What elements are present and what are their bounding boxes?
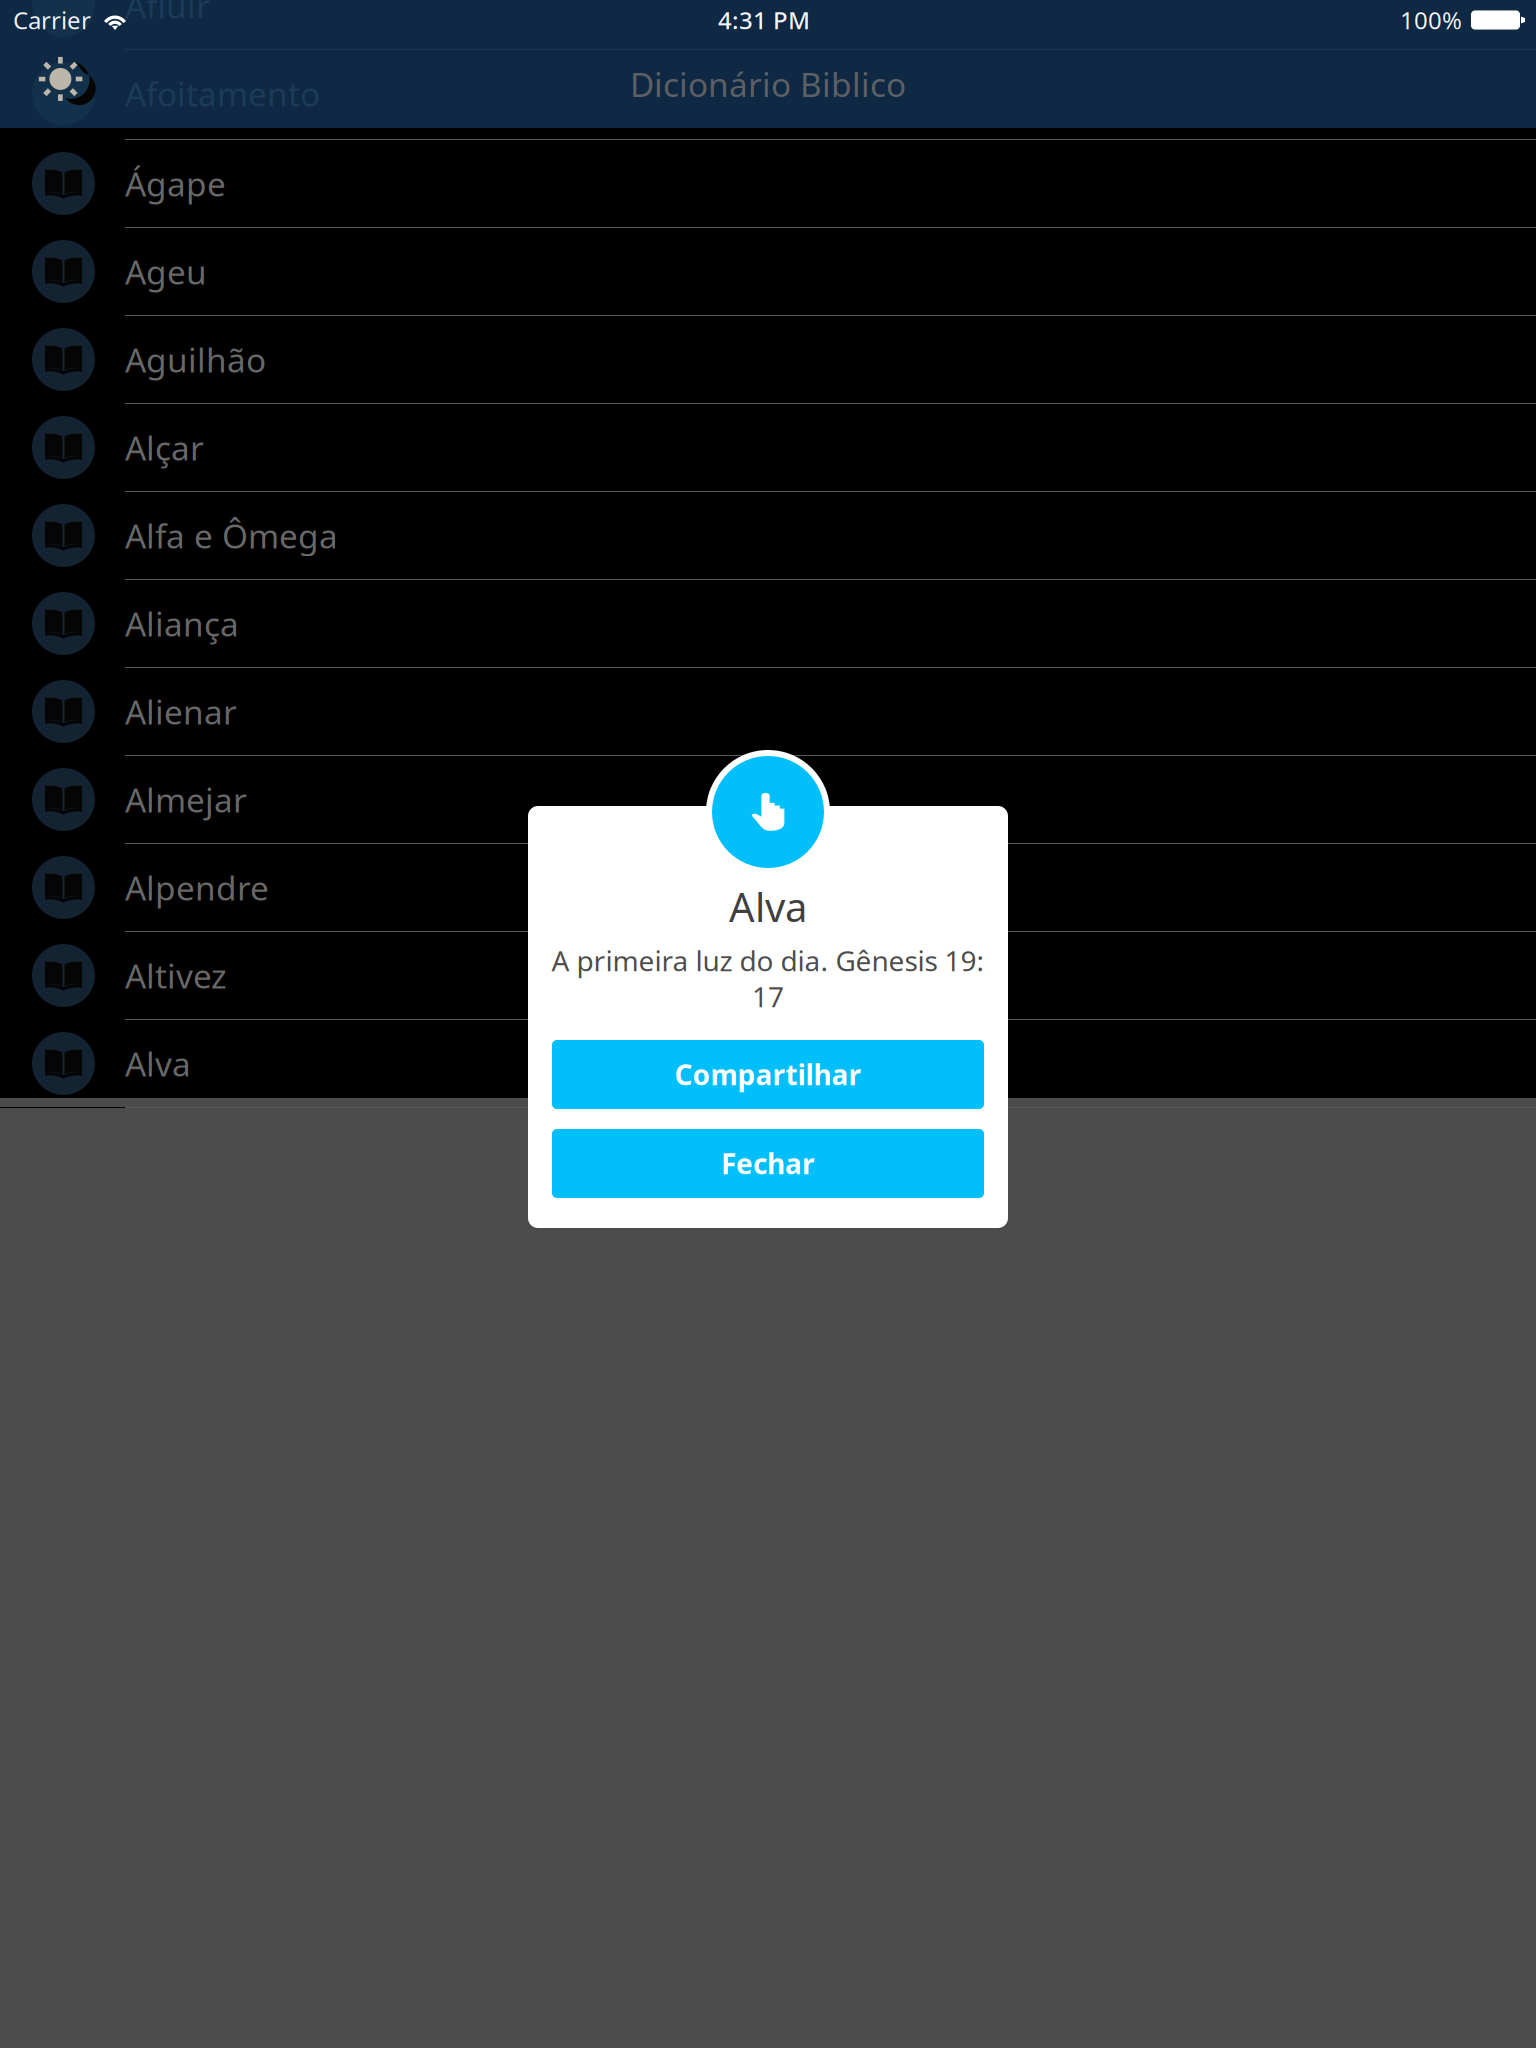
staticText: Compartilhar bbox=[674, 1056, 861, 1093]
staticText: Ágape bbox=[125, 161, 226, 206]
button[interactable]: Alternar modo noturno bbox=[0, 40, 135, 128]
button[interactable]: Alpendre bbox=[0, 844, 1536, 932]
staticText: Alienar bbox=[125, 689, 237, 734]
staticText: 17 bbox=[752, 978, 784, 1015]
button[interactable]: Alienar bbox=[0, 668, 1536, 756]
staticText: Afoitamento bbox=[125, 71, 320, 116]
staticText: Fechar bbox=[721, 1145, 815, 1182]
staticText: Ageu bbox=[125, 249, 207, 294]
staticText: Almejar bbox=[125, 777, 247, 822]
staticText: Afluir bbox=[125, 0, 210, 28]
button[interactable]: Alva bbox=[0, 1020, 1536, 1108]
button[interactable]: Altivez bbox=[0, 932, 1536, 1020]
button[interactable]: Compartilhar bbox=[552, 1040, 984, 1109]
staticText: Carrier bbox=[13, 4, 91, 36]
staticText: A primeira luz do dia. Gênesis 19: bbox=[551, 942, 984, 979]
button[interactable]: Ageu bbox=[0, 228, 1536, 316]
staticText: 100% bbox=[1400, 4, 1462, 36]
staticText: Alçar bbox=[125, 425, 204, 470]
button[interactable]: Alçar bbox=[0, 404, 1536, 492]
staticText: 4:31 PM bbox=[718, 4, 810, 36]
button[interactable]: Alfa e Ômega bbox=[0, 492, 1536, 580]
button[interactable]: Ágape bbox=[0, 140, 1536, 228]
staticText: Dicionário Biblico bbox=[630, 62, 906, 106]
staticText: Alfa e Ômega bbox=[125, 513, 338, 558]
button[interactable]: Almejar bbox=[0, 756, 1536, 844]
staticText: Alpendre bbox=[125, 865, 269, 910]
button[interactable]: Aliança bbox=[0, 580, 1536, 668]
staticText: Altivez bbox=[125, 953, 227, 998]
staticText: Aguilhão bbox=[125, 337, 266, 382]
button[interactable]: Aguilhão bbox=[0, 316, 1536, 404]
button[interactable]: Fechar bbox=[552, 1129, 984, 1198]
staticText: Alva bbox=[729, 880, 807, 933]
staticText: Aliança bbox=[125, 601, 239, 646]
staticText: Alva bbox=[125, 1041, 191, 1086]
